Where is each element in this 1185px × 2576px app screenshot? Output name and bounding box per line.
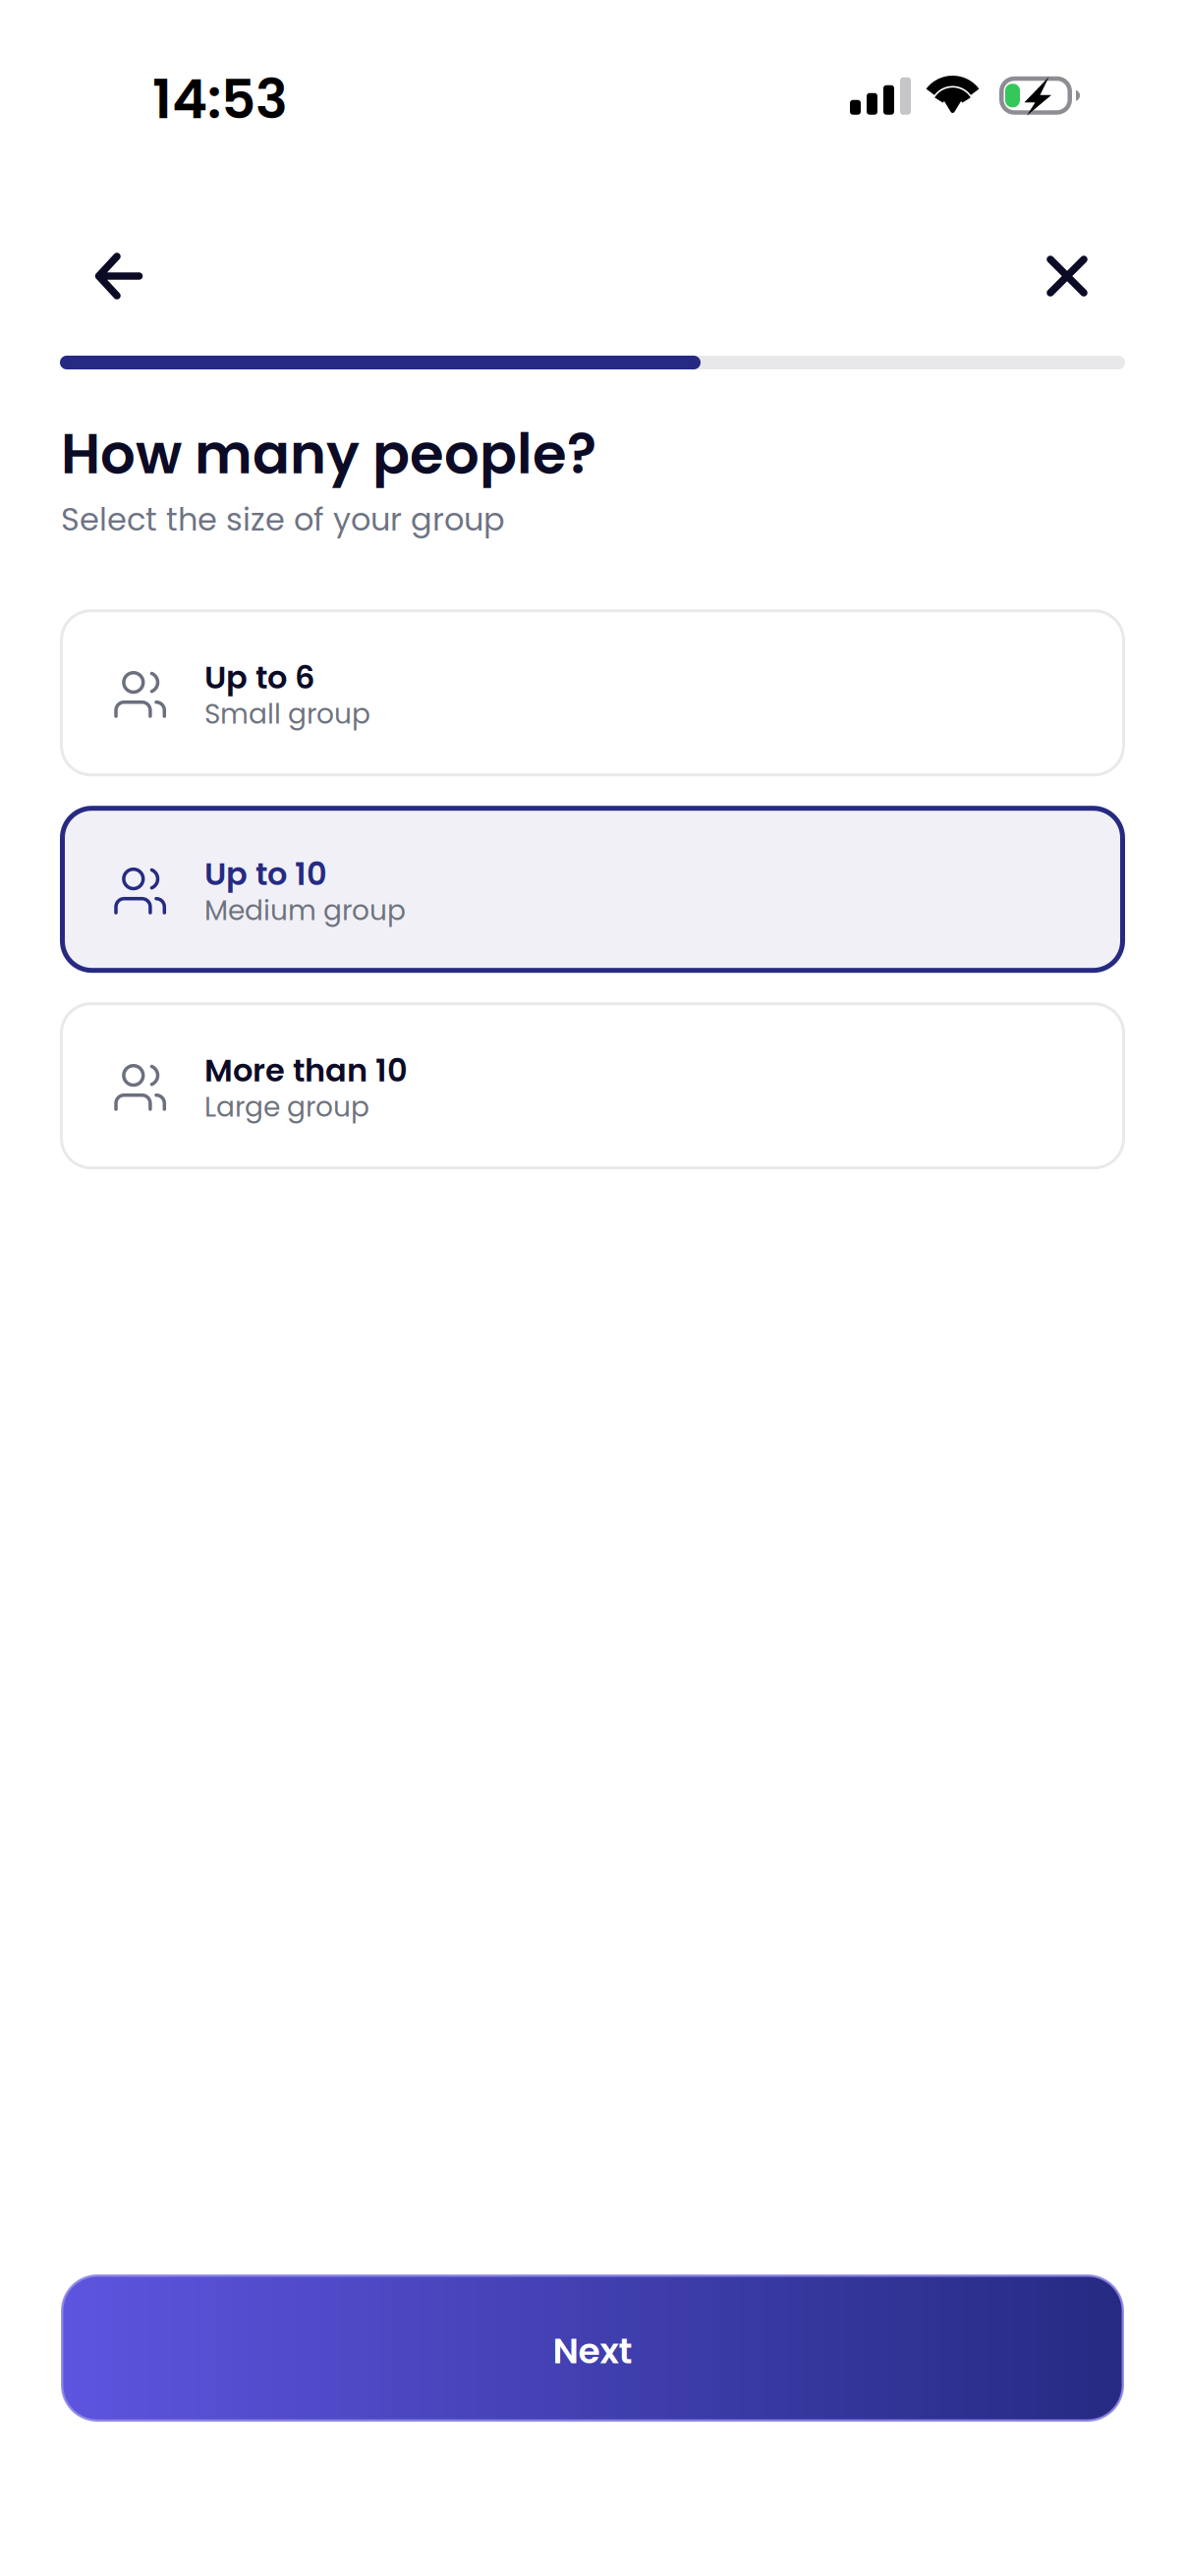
button[interactable]: Back xyxy=(75,232,163,320)
staticText: 14:53 xyxy=(152,62,288,137)
staticText: Small group xyxy=(204,695,370,733)
staticText: Select the size of your group xyxy=(61,498,505,542)
button[interactable]: Next xyxy=(61,2274,1124,2422)
button[interactable]: More than 10 xyxy=(60,1002,1125,1169)
staticText: Medium group xyxy=(204,891,406,930)
button[interactable]: Up to 6 xyxy=(60,609,1125,776)
staticText: Next xyxy=(553,2326,632,2376)
staticText: More than 10 xyxy=(204,1048,408,1092)
staticText: Large group xyxy=(204,1088,369,1126)
staticText: How many people? xyxy=(61,416,596,493)
staticText: Up to 6 xyxy=(204,655,314,700)
button[interactable]: Up to 10 xyxy=(60,806,1125,973)
staticText: Up to 10 xyxy=(204,852,327,896)
button[interactable]: Close xyxy=(1023,232,1111,320)
